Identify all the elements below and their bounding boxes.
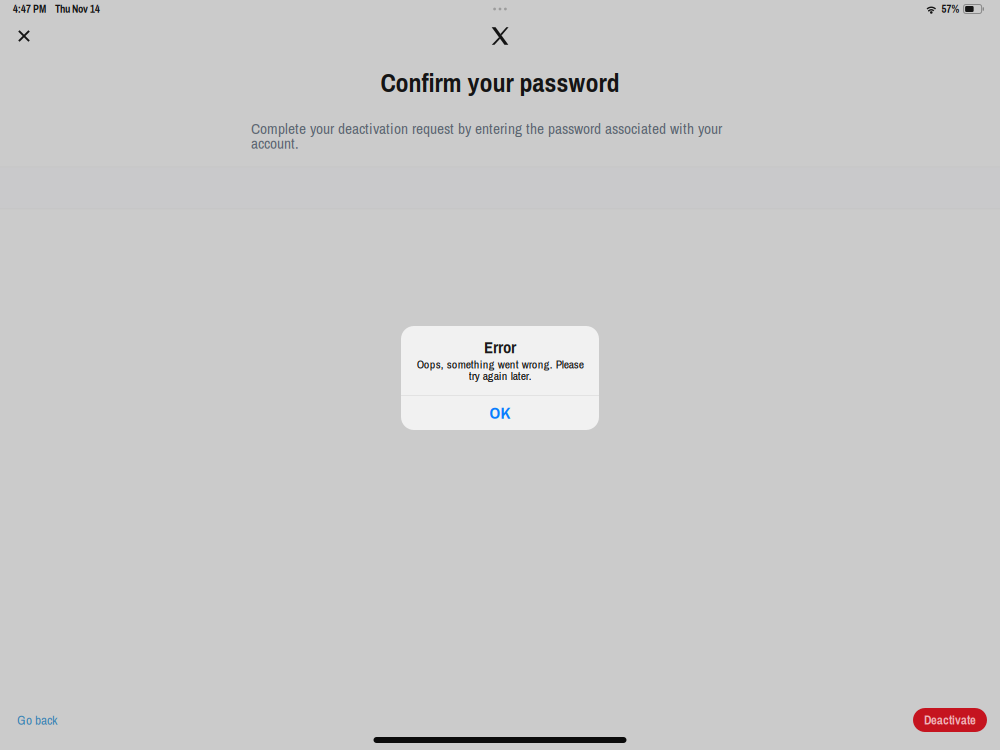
button[interactable]: Go back — [12, 704, 62, 736]
staticText: Thu Nov 14 — [55, 2, 100, 16]
staticText: Confirm your password — [380, 65, 619, 100]
button[interactable]: Deactivate — [913, 708, 987, 732]
staticText: Go back — [17, 711, 57, 729]
staticText: OK — [489, 402, 510, 424]
button[interactable]: Close — [7, 22, 41, 50]
staticText: 57% — [942, 2, 960, 16]
button[interactable]: OK — [401, 396, 599, 430]
staticText: Oops, something went wrong. Please try a… — [416, 356, 583, 384]
staticText: 4:47 PM — [13, 2, 46, 16]
staticText: Error — [484, 336, 516, 358]
staticText: Complete your deactivation request by en… — [251, 118, 722, 154]
staticText: Deactivate — [924, 711, 976, 729]
